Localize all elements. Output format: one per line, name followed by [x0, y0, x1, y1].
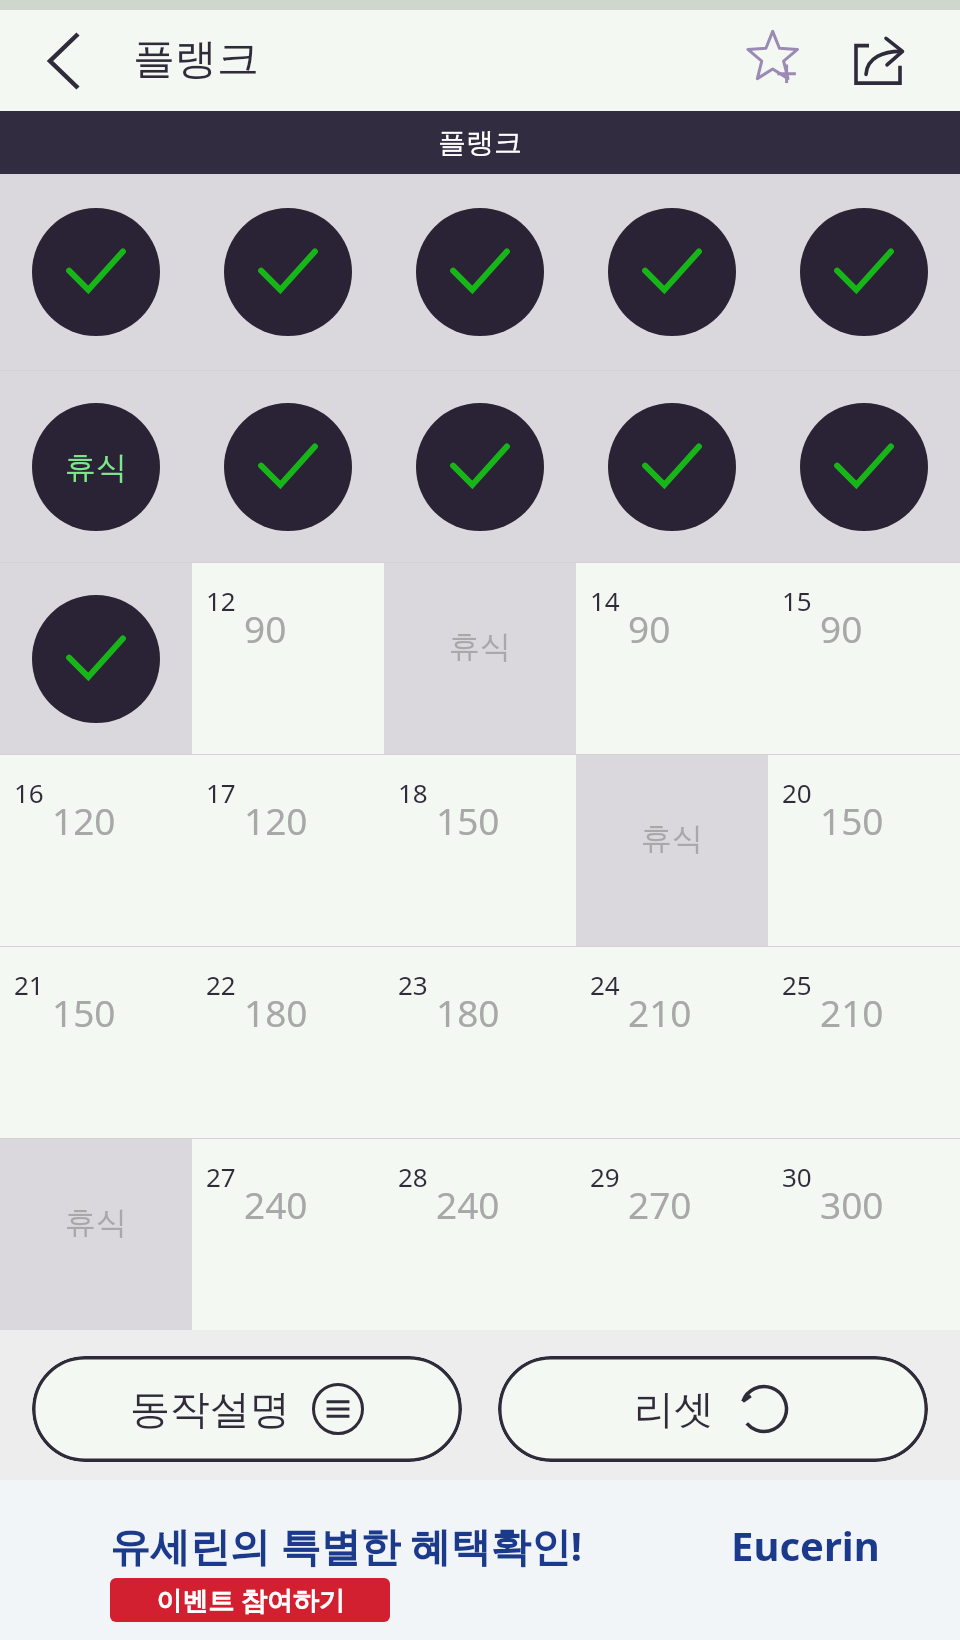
- staticText: Eucerin: [731, 1518, 880, 1572]
- button[interactable]: 18: [384, 755, 576, 946]
- staticText: 120: [244, 795, 308, 845]
- button[interactable]: [0, 174, 192, 370]
- staticText: 23: [398, 967, 428, 1002]
- button[interactable]: 27: [192, 1139, 384, 1330]
- staticText: 180: [436, 987, 500, 1037]
- staticText: 20: [782, 775, 812, 810]
- button[interactable]: 30: [768, 1139, 960, 1330]
- staticText: 25: [782, 967, 812, 1002]
- staticText: 리셋: [634, 1384, 714, 1434]
- staticText: 21: [14, 967, 44, 1002]
- button[interactable]: 휴식: [0, 1139, 192, 1330]
- staticText: 이벤트 참여하기: [156, 1582, 345, 1618]
- button[interactable]: Add to favorites: [731, 17, 819, 105]
- staticText: 24: [590, 967, 620, 1002]
- button[interactable]: 리셋: [498, 1356, 928, 1462]
- staticText: 270: [628, 1179, 692, 1229]
- staticText: 17: [206, 775, 236, 810]
- button[interactable]: 휴식: [384, 563, 576, 754]
- staticText: 90: [820, 603, 863, 653]
- staticText: 플랭크: [133, 33, 259, 86]
- staticText: 16: [14, 775, 44, 810]
- staticText: 180: [244, 987, 308, 1037]
- staticText: 휴식: [449, 627, 511, 666]
- button[interactable]: 17: [192, 755, 384, 946]
- staticText: 휴식: [65, 448, 127, 487]
- button[interactable]: [384, 371, 576, 562]
- staticText: 210: [628, 987, 692, 1037]
- button[interactable]: 21: [0, 947, 192, 1138]
- staticText: 120: [52, 795, 116, 845]
- button[interactable]: [384, 174, 576, 370]
- button[interactable]: [768, 371, 960, 562]
- staticText: 유세린의 특별한 혜택확인!: [110, 1518, 583, 1573]
- staticText: 18: [398, 775, 428, 810]
- staticText: 플랭크: [438, 125, 522, 160]
- button[interactable]: 14: [576, 563, 768, 754]
- staticText: 150: [820, 795, 884, 845]
- button[interactable]: 20: [768, 755, 960, 946]
- staticText: 90: [628, 603, 671, 653]
- staticText: 150: [436, 795, 500, 845]
- button[interactable]: 휴식: [0, 371, 192, 562]
- staticText: 휴식: [641, 819, 703, 858]
- staticText: 휴식: [65, 1203, 127, 1242]
- staticText: 29: [590, 1159, 620, 1194]
- button[interactable]: 25: [768, 947, 960, 1138]
- button[interactable]: [192, 174, 384, 370]
- button[interactable]: [192, 371, 384, 562]
- staticText: 동작설명: [130, 1384, 290, 1434]
- staticText: 27: [206, 1159, 236, 1194]
- staticText: 12: [206, 583, 236, 618]
- staticText: 30: [782, 1159, 812, 1194]
- button[interactable]: 22: [192, 947, 384, 1138]
- button[interactable]: 29: [576, 1139, 768, 1330]
- staticText: 14: [590, 583, 620, 618]
- button[interactable]: 15: [768, 563, 960, 754]
- staticText: 22: [206, 967, 236, 1002]
- button[interactable]: [0, 563, 192, 754]
- button[interactable]: 12: [192, 563, 384, 754]
- staticText: 240: [436, 1179, 500, 1229]
- button[interactable]: 23: [384, 947, 576, 1138]
- staticText: 28: [398, 1159, 428, 1194]
- button[interactable]: [576, 371, 768, 562]
- button[interactable]: Back: [24, 21, 104, 101]
- button[interactable]: 28: [384, 1139, 576, 1330]
- staticText: 210: [820, 987, 884, 1037]
- button[interactable]: 16: [0, 755, 192, 946]
- staticText: 150: [52, 987, 116, 1037]
- staticText: 240: [244, 1179, 308, 1229]
- button[interactable]: [768, 174, 960, 370]
- staticText: 15: [782, 583, 812, 618]
- button[interactable]: [576, 174, 768, 370]
- staticText: 300: [820, 1179, 884, 1229]
- button[interactable]: 휴식: [576, 755, 768, 946]
- button[interactable]: 동작설명: [32, 1356, 462, 1462]
- staticText: 90: [244, 603, 287, 653]
- button[interactable]: 24: [576, 947, 768, 1138]
- button[interactable]: Share: [835, 17, 923, 105]
